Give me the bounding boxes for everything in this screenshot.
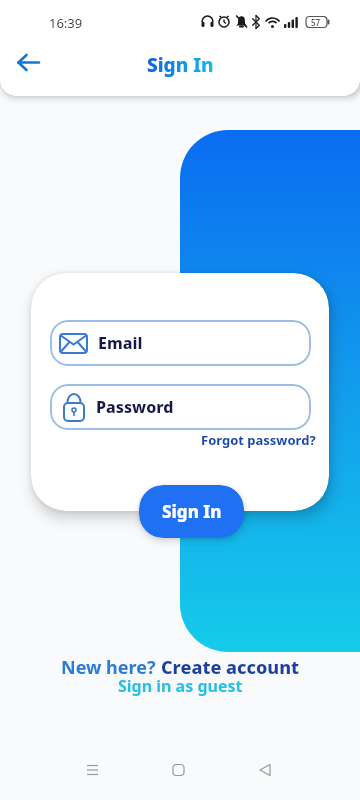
button[interactable] [10, 44, 46, 80]
staticText: Email [98, 332, 143, 354]
button[interactable]: Sign in as guest [0, 675, 360, 697]
button[interactable]: Email [50, 320, 311, 366]
button[interactable]: New here? [0, 655, 360, 680]
staticText: Sign In [147, 52, 214, 78]
button[interactable]: Password [50, 384, 311, 430]
staticText: 16:39 [49, 14, 83, 32]
staticText: Sign In [162, 500, 222, 523]
staticText: Create account [161, 655, 300, 680]
staticText: New here? [61, 655, 161, 680]
button[interactable]: Forgot password? [201, 431, 316, 449]
staticText: Password [96, 396, 174, 418]
button[interactable]: Sign In [139, 485, 244, 538]
staticText: Sign in as guest [118, 675, 243, 697]
staticText: Forgot password? [201, 431, 316, 449]
staticText: 57 [311, 17, 321, 28]
